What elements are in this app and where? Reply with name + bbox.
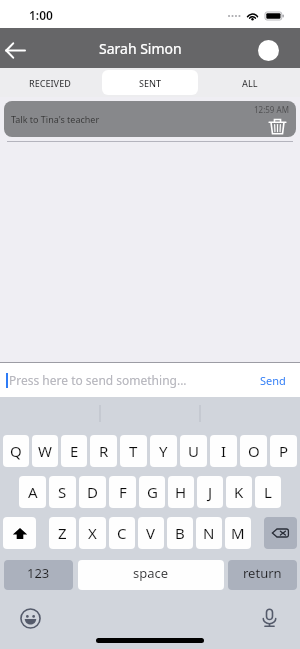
button[interactable]: return — [228, 560, 297, 590]
staticText: B — [175, 523, 185, 543]
staticText: space — [133, 564, 169, 582]
button[interactable]: L — [255, 476, 281, 508]
button[interactable]: space — [78, 560, 224, 590]
button[interactable]: Dictation — [258, 606, 281, 629]
button[interactable]: X — [79, 517, 106, 549]
button[interactable]: SENT — [102, 70, 198, 95]
button[interactable]: Backspace — [264, 517, 297, 549]
button[interactable]: H — [168, 476, 194, 508]
staticText: W — [38, 441, 52, 461]
button[interactable]: 123 — [4, 560, 73, 590]
staticText: A — [28, 482, 38, 502]
button[interactable]: A — [19, 476, 46, 508]
staticText: Talk to Tina's teacher — [11, 113, 100, 125]
button[interactable]: Z — [49, 517, 76, 549]
button[interactable]: Contact photo — [258, 40, 279, 61]
staticText: S — [58, 482, 67, 502]
staticText: I — [221, 441, 227, 461]
button[interactable]: J — [197, 476, 223, 508]
button[interactable]: W — [32, 435, 58, 467]
staticText: 123 — [27, 564, 50, 582]
staticText: return — [243, 564, 282, 582]
button[interactable]: Delete message — [268, 117, 287, 136]
staticText: X — [88, 523, 97, 543]
staticText: N — [203, 523, 215, 543]
staticText: F — [119, 482, 127, 502]
button[interactable]: Y — [150, 435, 177, 467]
staticText: Send — [260, 373, 286, 388]
button[interactable]: K — [226, 476, 252, 508]
staticText: ALL — [242, 77, 258, 89]
button[interactable]: E — [61, 435, 87, 467]
staticText: 12:59 AM — [254, 104, 289, 115]
staticText: C — [117, 523, 127, 543]
staticText: R — [99, 441, 109, 461]
staticText: T — [129, 441, 138, 461]
staticText: 1:00 — [29, 7, 53, 23]
staticText: P — [279, 441, 289, 461]
staticText: SENT — [139, 77, 162, 89]
button[interactable]: T — [120, 435, 147, 467]
button[interactable]: ALL — [202, 70, 298, 95]
button[interactable]: I — [210, 435, 237, 467]
button[interactable]: O — [240, 435, 267, 467]
staticText: J — [208, 482, 213, 502]
button[interactable]: G — [139, 476, 165, 508]
staticText: Y — [159, 441, 168, 461]
button[interactable]: D — [79, 476, 106, 508]
button[interactable]: F — [109, 476, 136, 508]
staticText: Z — [58, 523, 67, 543]
button[interactable]: Send — [246, 363, 300, 397]
staticText: G — [147, 482, 158, 502]
button[interactable]: V — [138, 517, 164, 549]
staticText: K — [234, 482, 244, 502]
staticText: D — [87, 482, 98, 502]
button[interactable]: Emoji keyboard — [20, 608, 41, 629]
staticText: Q — [10, 441, 22, 461]
button[interactable]: B — [167, 517, 193, 549]
button[interactable]: RECEIVED — [2, 70, 98, 95]
button[interactable]: Q — [3, 435, 29, 467]
staticText: V — [146, 523, 156, 543]
staticText: E — [70, 441, 79, 461]
button[interactable]: S — [49, 476, 76, 508]
button[interactable]: U — [180, 435, 207, 467]
button[interactable]: P — [270, 435, 297, 467]
staticText: Sarah Simon — [99, 39, 182, 58]
button[interactable]: N — [196, 517, 222, 549]
staticText: M — [231, 523, 245, 543]
button[interactable]: R — [90, 435, 117, 467]
staticText: H — [175, 482, 187, 502]
button[interactable]: Back — [0, 28, 30, 68]
staticText: O — [248, 441, 260, 461]
button[interactable]: M — [225, 517, 251, 549]
staticText: L — [264, 482, 272, 502]
staticText: U — [188, 441, 199, 461]
button[interactable]: Shift — [3, 517, 36, 549]
staticText: RECEIVED — [29, 77, 71, 89]
staticText: Press here to send something... — [9, 372, 246, 388]
button[interactable]: C — [109, 517, 135, 549]
button[interactable]: Talk to Tina's teacher — [4, 101, 296, 137]
